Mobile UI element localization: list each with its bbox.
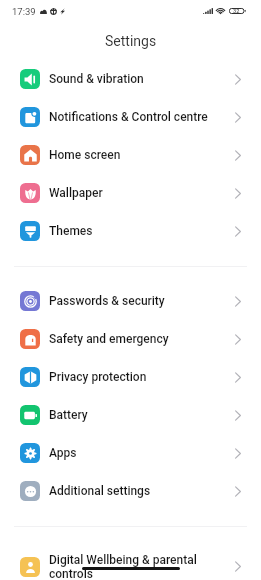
button[interactable]: Sound & vibration	[0, 60, 261, 98]
button[interactable]: Home screen	[0, 136, 261, 174]
staticText: Themes	[49, 224, 230, 238]
button[interactable]: Digital Wellbeing & parental controls	[0, 542, 261, 580]
staticText: Safety and emergency	[49, 332, 230, 346]
button[interactable]: Notifications & Control centre	[0, 98, 261, 136]
staticText: Additional settings	[49, 484, 230, 498]
button[interactable]: Passwords & security	[0, 282, 261, 320]
staticText: Home screen	[49, 148, 230, 162]
staticText: 17:39	[12, 6, 36, 17]
staticText: Notifications & Control centre	[49, 110, 230, 124]
button[interactable]: Themes	[0, 212, 261, 250]
staticText: Settings	[105, 33, 157, 49]
staticText: Battery	[49, 408, 230, 422]
button[interactable]: Wallpaper	[0, 174, 261, 212]
staticText: Digital Wellbeing & parental controls	[49, 553, 230, 580]
staticText: Passwords & security	[49, 294, 230, 308]
button[interactable]: Safety and emergency	[0, 320, 261, 358]
staticText: Apps	[49, 446, 230, 460]
staticText: Wallpaper	[49, 186, 230, 200]
staticText: Privacy protection	[49, 370, 230, 384]
staticText: 32	[233, 8, 240, 14]
button[interactable]: Privacy protection	[0, 358, 261, 396]
button[interactable]: Battery	[0, 396, 261, 434]
button[interactable]: Additional settings	[0, 472, 261, 510]
button[interactable]: Apps	[0, 434, 261, 472]
staticText: Sound & vibration	[49, 72, 230, 86]
